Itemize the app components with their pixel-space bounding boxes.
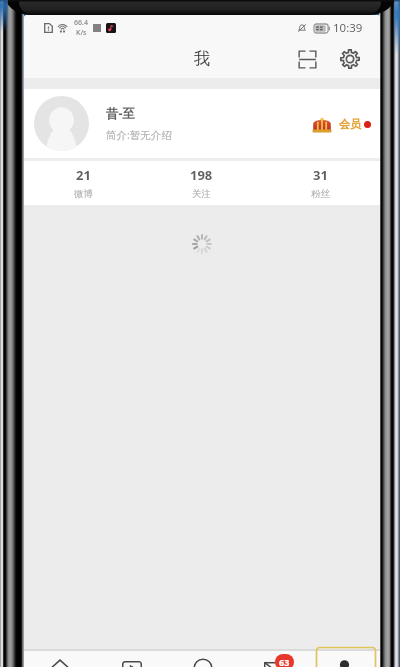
- staticText: 10:39: [333, 20, 363, 36]
- button[interactable]: 21: [24, 161, 142, 205]
- staticText: 会员: [339, 117, 361, 131]
- staticText: 我: [194, 48, 211, 69]
- button[interactable]: Discover: [167, 649, 238, 667]
- button[interactable]: 198: [142, 161, 261, 205]
- staticText: 63: [279, 656, 290, 667]
- button[interactable]: 昔-至: [24, 89, 380, 158]
- staticText: 昔-至: [106, 105, 136, 122]
- staticText: 粉丝: [311, 188, 330, 200]
- button[interactable]: Home: [24, 649, 96, 667]
- staticText: K/s: [76, 28, 87, 38]
- button[interactable]: Profile: [309, 649, 380, 667]
- staticText: 关注: [192, 188, 211, 200]
- button[interactable]: Video: [96, 649, 167, 667]
- staticText: 微博: [74, 188, 93, 200]
- button[interactable]: Settings: [333, 42, 367, 76]
- button[interactable]: 31: [261, 161, 380, 205]
- staticText: 简介:暂无介绍: [106, 128, 172, 142]
- button[interactable]: Scan QR code: [290, 42, 324, 76]
- staticText: 198: [190, 166, 213, 184]
- staticText: 31: [313, 166, 328, 184]
- staticText: 21: [76, 166, 91, 184]
- staticText: 66.4: [74, 18, 88, 28]
- button[interactable]: Messages: [238, 649, 309, 667]
